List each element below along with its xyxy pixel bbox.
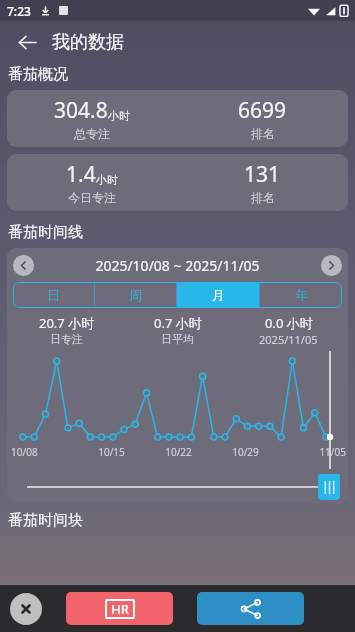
staticText: 11/05 xyxy=(279,445,346,459)
button[interactable]: Heart rate xyxy=(66,592,173,625)
button[interactable]: 1.4 xyxy=(7,154,348,211)
button[interactable]: Back xyxy=(10,25,44,59)
staticText: 日专注 xyxy=(50,332,83,346)
staticText: 6699 xyxy=(238,96,287,125)
staticText: 2025/10/08 ~ 2025/11/05 xyxy=(34,256,321,275)
button[interactable]: Next xyxy=(321,255,342,276)
staticText: 20.7 小时 xyxy=(39,314,95,332)
staticText: 小时 xyxy=(96,173,118,187)
button[interactable]: Previous xyxy=(13,255,34,276)
staticText: 周 xyxy=(129,287,142,303)
button[interactable]: 月 xyxy=(177,282,259,308)
staticText: 1.4 xyxy=(66,160,96,189)
staticText: 排名 xyxy=(251,126,275,141)
staticText: 番茄时间线 xyxy=(8,223,83,242)
staticText: 10/29 xyxy=(212,445,279,459)
staticText: 2025/11/05 xyxy=(259,332,318,347)
button[interactable]: Close xyxy=(10,593,42,625)
staticText: 番茄概况 xyxy=(8,65,68,84)
staticText: 日平均 xyxy=(161,332,194,346)
staticText: HR xyxy=(111,600,129,618)
staticText: 7:23 xyxy=(7,3,31,19)
staticText: 总专注 xyxy=(74,126,110,141)
staticText: 304.8 xyxy=(54,96,108,125)
staticText: 10/08 xyxy=(11,445,78,459)
button[interactable]: 周 xyxy=(95,282,176,308)
staticText: 10/22 xyxy=(145,445,212,459)
button[interactable]: 日 xyxy=(13,282,94,308)
staticText: 0.7 小时 xyxy=(154,314,202,332)
staticText: 小时 xyxy=(108,109,130,123)
staticText: 131 xyxy=(244,160,281,189)
button[interactable]: Share xyxy=(197,592,304,625)
staticText: 今日专注 xyxy=(68,190,116,205)
staticText: 年 xyxy=(295,287,308,303)
staticText: 番茄时间块 xyxy=(8,511,83,530)
button[interactable]: Scroll handle xyxy=(318,474,340,500)
button[interactable]: 304.8 xyxy=(7,90,348,147)
staticText: 月 xyxy=(212,287,225,303)
staticText: 日 xyxy=(47,287,60,303)
staticText: 我的数据 xyxy=(52,31,124,54)
staticText: 排名 xyxy=(251,190,275,205)
button[interactable]: 年 xyxy=(260,282,342,308)
staticText: 0.0 小时 xyxy=(265,314,313,332)
staticText: 10/15 xyxy=(78,445,145,459)
